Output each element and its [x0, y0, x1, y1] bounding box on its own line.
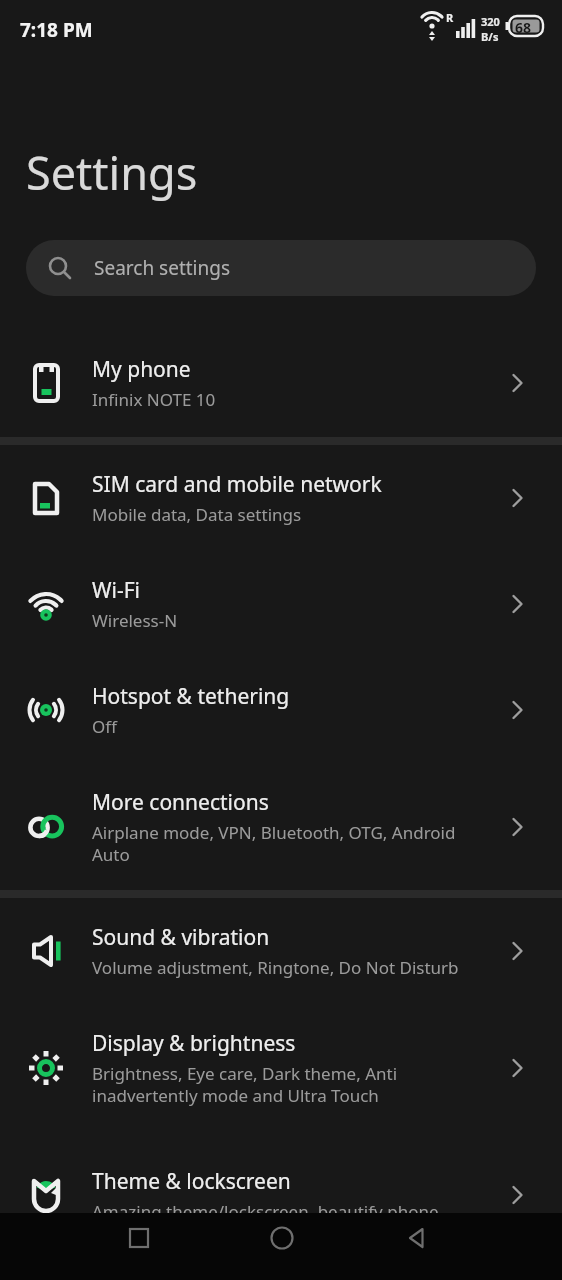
staticText: Off — [92, 715, 117, 738]
button[interactable] — [117, 1216, 161, 1260]
staticText: Airplane mode, VPN, Bluetooth, OTG, Andr… — [92, 821, 471, 866]
button[interactable]: Display & brightness — [0, 1004, 562, 1131]
staticText: 7:18 PM — [20, 17, 93, 43]
staticText: Infinix NOTE 10 — [92, 388, 216, 411]
staticText: Settings — [26, 142, 198, 203]
staticText: 68 — [515, 18, 532, 37]
staticText: R — [446, 10, 454, 25]
staticText: Volume adjustment, Ringtone, Do Not Dist… — [92, 956, 459, 979]
staticText: Display & brightness — [92, 1029, 296, 1058]
staticText: SIM card and mobile network — [92, 470, 382, 499]
staticText: B/s — [481, 29, 499, 44]
staticText: Sound & vibration — [92, 923, 270, 952]
staticText: Wi-Fi — [92, 576, 141, 605]
button[interactable] — [395, 1216, 439, 1260]
button[interactable]: Sound & vibration — [0, 898, 562, 1004]
button[interactable]: Hotspot & tethering — [0, 657, 562, 763]
button[interactable]: Theme & lockscreen — [0, 1131, 562, 1258]
button[interactable]: My phone — [0, 328, 562, 437]
staticText: 320 — [481, 14, 500, 29]
staticText: Theme & lockscreen — [92, 1167, 291, 1196]
button[interactable] — [260, 1216, 304, 1260]
staticText: Brightness, Eye care, Dark theme, Anti i… — [92, 1062, 471, 1107]
button[interactable]: Wi-Fi — [0, 551, 562, 657]
button[interactable]: SIM card and mobile network — [0, 445, 562, 551]
staticText: My phone — [92, 355, 191, 384]
button[interactable]: More connections — [0, 763, 562, 890]
button[interactable]: Search settings — [26, 240, 536, 296]
staticText: Wireless-N — [92, 609, 178, 632]
staticText: Mobile data, Data settings — [92, 503, 302, 526]
staticText: Hotspot & tethering — [92, 682, 290, 711]
staticText: Search settings — [94, 255, 231, 281]
staticText: Amazing theme/lockscreen, beautify phone — [92, 1200, 439, 1223]
staticText: More connections — [92, 788, 269, 817]
